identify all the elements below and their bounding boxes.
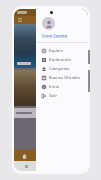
button[interactable]: Open menu	[17, 17, 23, 23]
staticText: Salir	[49, 93, 58, 98]
button[interactable]: Categorías	[36, 64, 88, 73]
button[interactable]: Exploración	[36, 55, 88, 64]
button[interactable]: Recents	[22, 162, 30, 170]
button[interactable]: Profile picture	[42, 17, 55, 30]
button[interactable]: Buenos Oficiales	[36, 73, 88, 82]
staticText: Buenos Oficiales	[49, 75, 81, 80]
button[interactable]	[14, 70, 88, 106]
button[interactable]	[14, 24, 88, 68]
button[interactable]	[14, 108, 88, 118]
button[interactable]: Salir	[36, 91, 88, 100]
staticText: Categorías	[49, 66, 70, 71]
button[interactable]: Inicio	[36, 82, 88, 91]
staticText: Crear Cuenta	[42, 33, 68, 38]
button[interactable]: Explore	[36, 46, 88, 55]
staticText: Explore	[49, 48, 64, 53]
button[interactable]: Home	[20, 152, 28, 160]
staticText: Inicio	[49, 84, 60, 89]
staticText: Exploración	[49, 57, 71, 62]
button[interactable]: Crear Cuenta	[42, 33, 68, 38]
